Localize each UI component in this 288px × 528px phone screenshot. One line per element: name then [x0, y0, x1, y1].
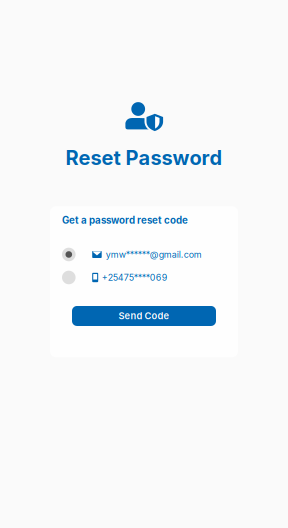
button[interactable]: +25475****069: [62, 266, 238, 289]
staticText: +25475****069: [102, 272, 168, 283]
staticText: Send Code: [118, 310, 169, 322]
button[interactable]: Send Code: [72, 306, 216, 326]
button[interactable]: ymw******@gmail.com: [62, 243, 238, 266]
staticText: Get a password reset code: [62, 214, 188, 226]
staticText: ymw******@gmail.com: [106, 249, 202, 260]
staticText: Reset Password: [65, 145, 222, 170]
